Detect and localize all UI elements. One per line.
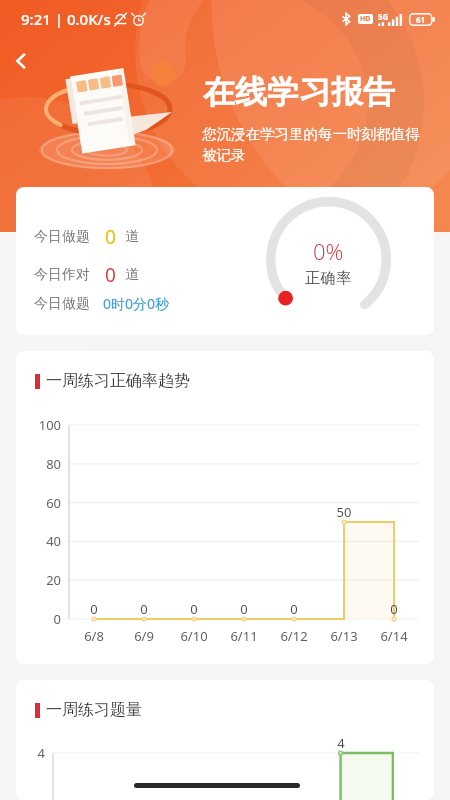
staticText: 0 xyxy=(169,600,219,618)
staticText: 4 xyxy=(16,744,45,762)
staticText: 6/14 xyxy=(369,627,419,645)
staticText: 道 xyxy=(125,266,139,284)
staticText: 6/9 xyxy=(119,627,169,645)
staticText: 0 xyxy=(19,610,61,628)
staticText: 0 xyxy=(369,600,419,618)
staticText: HD xyxy=(360,14,371,24)
staticText: 5G xyxy=(378,11,389,22)
staticText: 今日做题 xyxy=(34,295,90,313)
staticText: 0% xyxy=(313,236,344,266)
staticText: 0 xyxy=(219,600,269,618)
staticText: 0 xyxy=(119,600,169,618)
staticText: 50 xyxy=(319,503,369,521)
staticText: 6/10 xyxy=(169,627,219,645)
staticText: 100 xyxy=(19,416,61,434)
staticText: 一周练习题量 xyxy=(46,700,142,720)
staticText: 4 xyxy=(316,734,366,752)
staticText: 6/8 xyxy=(69,627,119,645)
staticText: 一周练习正确率趋势 xyxy=(46,371,190,391)
staticText: 61 xyxy=(416,14,426,25)
staticText: 9:21 | 0.0K/s xyxy=(21,9,111,29)
staticText: 道 xyxy=(125,228,139,246)
staticText: 今日做题 xyxy=(34,228,90,246)
staticText: 0 xyxy=(69,600,119,618)
staticText: 0 xyxy=(105,262,116,288)
staticText: 正确率 xyxy=(305,269,352,288)
staticText: 您沉浸在学习里的每一时刻都值得被记录 xyxy=(202,125,428,164)
staticText: 6/12 xyxy=(269,627,319,645)
staticText: 0 xyxy=(105,224,116,250)
staticText: 60 xyxy=(19,494,61,512)
staticText: 6/13 xyxy=(319,627,369,645)
staticText: 在线学习报告 xyxy=(203,72,395,112)
staticText: 40 xyxy=(19,532,61,550)
staticText: 0 xyxy=(269,600,319,618)
staticText: 6/11 xyxy=(219,627,269,645)
staticText: 0时0分0秒 xyxy=(103,294,170,313)
staticText: 20 xyxy=(19,571,61,589)
button[interactable]: Back xyxy=(5,45,37,77)
staticText: 80 xyxy=(19,455,61,473)
staticText: 今日作对 xyxy=(34,266,90,284)
